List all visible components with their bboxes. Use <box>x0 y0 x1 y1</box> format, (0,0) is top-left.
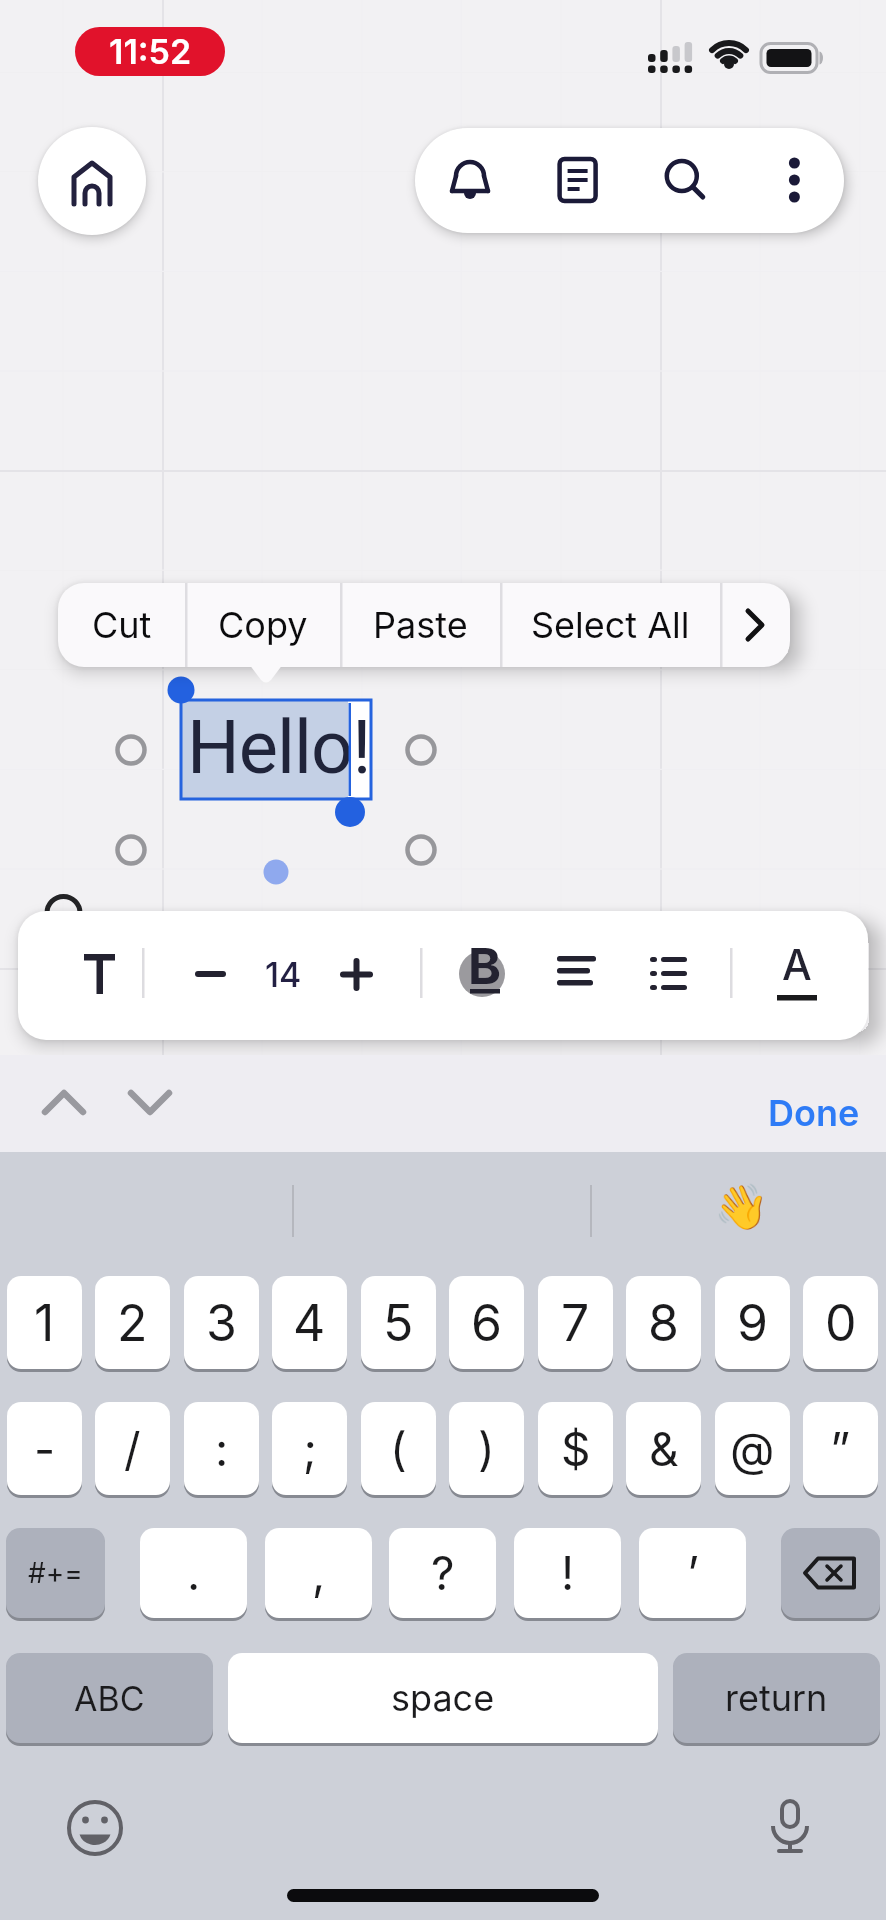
staticText: 7 <box>561 1293 590 1353</box>
button[interactable] <box>535 935 620 1015</box>
button[interactable] <box>755 140 835 220</box>
button[interactable] <box>720 583 790 667</box>
button[interactable]: 8 <box>626 1276 701 1369</box>
staticText: Copy <box>218 603 308 647</box>
button[interactable] <box>440 935 525 1015</box>
staticText: , <box>312 1545 326 1601</box>
staticText: ( <box>390 1421 407 1477</box>
staticText: ABC <box>74 1678 145 1719</box>
button[interactable]: 7 <box>538 1276 613 1369</box>
staticText: ? <box>431 1545 455 1601</box>
button[interactable] <box>320 935 400 1015</box>
button[interactable]: ABC <box>6 1653 213 1743</box>
button[interactable] <box>170 935 250 1015</box>
staticText: ; <box>303 1421 317 1477</box>
staticText: Select All <box>531 603 690 647</box>
staticText: / <box>124 1421 141 1477</box>
staticText: 9 <box>737 1293 769 1353</box>
button[interactable]: 👋 <box>713 1179 769 1235</box>
button[interactable] <box>55 935 145 1015</box>
staticText: Hello! <box>187 704 371 791</box>
button[interactable]: 4 <box>272 1276 347 1369</box>
button[interactable]: 0 <box>803 1276 878 1369</box>
button[interactable]: ! <box>514 1528 621 1618</box>
button[interactable]: . <box>140 1528 247 1618</box>
staticText: 6 <box>471 1293 503 1353</box>
staticText: 1 <box>34 1293 55 1353</box>
button[interactable]: 3 <box>184 1276 259 1369</box>
staticText: . <box>187 1545 201 1601</box>
staticText: 5 <box>383 1293 414 1353</box>
button[interactable]: ) <box>449 1402 524 1495</box>
staticText: #+= <box>28 1556 83 1590</box>
button[interactable]: #+= <box>6 1528 105 1618</box>
button[interactable]: space <box>228 1653 658 1743</box>
button[interactable]: Select All <box>500 583 720 667</box>
button[interactable]: Copy <box>185 583 340 667</box>
button[interactable]: return <box>673 1653 880 1743</box>
button[interactable]: Done <box>720 1085 860 1141</box>
button[interactable]: / <box>95 1402 170 1495</box>
staticText: Cut <box>92 603 152 647</box>
staticText: : <box>215 1421 229 1477</box>
staticText: - <box>34 1421 56 1477</box>
button[interactable]: & <box>626 1402 701 1495</box>
button[interactable] <box>625 935 710 1015</box>
staticText: 14 <box>265 954 302 995</box>
staticText: 4 <box>293 1293 326 1353</box>
staticText: ’ <box>687 1545 699 1601</box>
staticText: @ <box>730 1421 775 1477</box>
staticText: return <box>725 1676 828 1720</box>
staticText: space <box>391 1676 495 1720</box>
button[interactable] <box>30 1085 100 1125</box>
button[interactable]: ” <box>803 1402 878 1495</box>
button[interactable]: 1 <box>7 1276 82 1369</box>
staticText: 8 <box>648 1293 679 1353</box>
button[interactable] <box>38 127 146 235</box>
button[interactable]: @ <box>715 1402 790 1495</box>
staticText: 👋 <box>714 1181 769 1233</box>
button[interactable]: ? <box>389 1528 496 1618</box>
staticText: ! <box>561 1545 575 1601</box>
staticText: A <box>782 939 812 990</box>
button[interactable] <box>781 1528 880 1618</box>
staticText: ) <box>478 1421 495 1477</box>
button[interactable]: 6 <box>449 1276 524 1369</box>
button[interactable]: : <box>184 1402 259 1495</box>
button[interactable]: , <box>265 1528 372 1618</box>
button[interactable] <box>755 935 840 1015</box>
button[interactable]: - <box>7 1402 82 1495</box>
button[interactable] <box>755 1793 825 1863</box>
button[interactable] <box>60 1793 130 1863</box>
button[interactable] <box>430 140 510 220</box>
button[interactable]: Cut <box>58 583 185 667</box>
button[interactable]: $ <box>538 1402 613 1495</box>
button[interactable]: ( <box>361 1402 436 1495</box>
staticText: 0 <box>825 1293 857 1353</box>
staticText: 3 <box>206 1293 237 1353</box>
button[interactable]: ; <box>272 1402 347 1495</box>
staticText: & <box>649 1421 679 1477</box>
staticText: B <box>468 936 502 996</box>
button[interactable]: 9 <box>715 1276 790 1369</box>
button[interactable]: 2 <box>95 1276 170 1369</box>
button[interactable] <box>537 140 617 220</box>
button[interactable] <box>115 1085 185 1125</box>
button[interactable]: ’ <box>639 1528 746 1618</box>
staticText: 2 <box>117 1293 148 1353</box>
staticText: ” <box>830 1421 851 1477</box>
staticText: Done <box>768 1091 860 1135</box>
staticText: Paste <box>373 603 468 647</box>
button[interactable]: Paste <box>340 583 500 667</box>
button[interactable]: 5 <box>361 1276 436 1369</box>
staticText: 11:52 <box>109 31 192 72</box>
button[interactable] <box>645 140 725 220</box>
staticText: $ <box>561 1421 591 1477</box>
